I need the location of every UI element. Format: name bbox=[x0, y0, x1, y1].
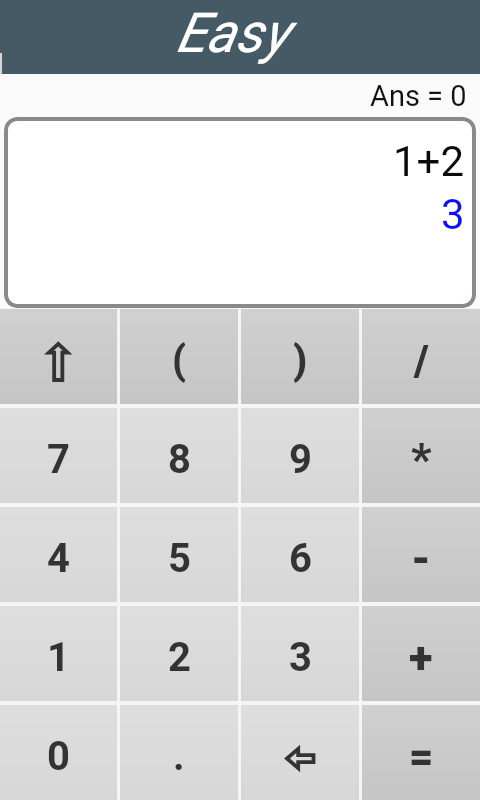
button[interactable]: / bbox=[362, 309, 480, 404]
staticText: - bbox=[411, 533, 431, 585]
button[interactable]: + bbox=[362, 606, 480, 701]
staticText: 4 bbox=[47, 535, 70, 582]
button[interactable]: 2 bbox=[120, 606, 238, 701]
staticText: ) bbox=[293, 337, 308, 384]
button[interactable]: . bbox=[120, 705, 238, 800]
staticText: 6 bbox=[289, 535, 312, 582]
button[interactable]: 5 bbox=[120, 507, 238, 602]
staticText: . bbox=[173, 733, 185, 780]
staticText: + bbox=[409, 632, 433, 684]
button[interactable]: 4 bbox=[0, 507, 117, 602]
staticText: 5 bbox=[168, 535, 191, 582]
staticText: Easy bbox=[176, 1, 289, 65]
button[interactable]: 8 bbox=[120, 408, 238, 503]
button[interactable]: 9 bbox=[241, 408, 359, 503]
button[interactable]: 1 bbox=[0, 606, 117, 701]
staticText: 2 bbox=[168, 634, 191, 681]
staticText: 1 bbox=[47, 634, 70, 681]
staticText: Ans = 0 bbox=[370, 79, 467, 113]
button[interactable]: 0 bbox=[0, 705, 117, 800]
staticText: 3 bbox=[289, 634, 312, 681]
staticText: 1+2 bbox=[393, 137, 465, 186]
staticText: 3 bbox=[441, 190, 465, 239]
staticText: / bbox=[414, 336, 429, 385]
button[interactable]: ) bbox=[241, 309, 359, 404]
staticText: 7 bbox=[47, 436, 70, 483]
staticText: ( bbox=[172, 337, 187, 384]
button[interactable]: = bbox=[362, 705, 480, 800]
staticText: 9 bbox=[289, 436, 312, 483]
button[interactable]: * bbox=[362, 408, 480, 503]
button[interactable]: 6 bbox=[241, 507, 359, 602]
button[interactable]: ( bbox=[120, 309, 238, 404]
button[interactable] bbox=[241, 705, 359, 800]
staticText: 0 bbox=[47, 733, 70, 780]
staticText: 8 bbox=[168, 436, 191, 483]
button[interactable]: 7 bbox=[0, 408, 117, 503]
staticText: * bbox=[411, 434, 432, 486]
staticText: = bbox=[409, 732, 434, 781]
button[interactable] bbox=[0, 309, 117, 404]
button[interactable]: 3 bbox=[241, 606, 359, 701]
button[interactable]: - bbox=[362, 507, 480, 602]
